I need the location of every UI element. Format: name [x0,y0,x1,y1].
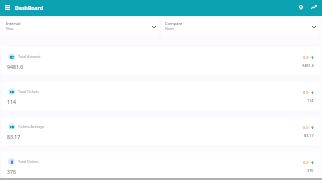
staticText: 376 [307,168,314,173]
staticText: Total Tickets [18,89,39,94]
button[interactable]: Analytics [307,0,320,16]
button[interactable]: Interval [3,18,159,35]
staticText: 0.0 [303,160,309,165]
staticText: 0.0 [303,55,309,60]
staticText: 0.0 [303,125,309,130]
staticText: DashBoard [15,4,44,11]
button[interactable]: Total Orders [2,152,320,180]
staticText: 9481.6 [7,63,24,70]
button[interactable]: Tickets Average [2,117,320,145]
button[interactable]: Compare [162,18,319,35]
button[interactable]: Location [295,0,307,16]
staticText: Total Amount [18,54,41,59]
staticText: 9481.6 [302,63,314,68]
staticText: 114 [307,98,314,103]
staticText: Tickets Average [18,124,45,129]
staticText: None [165,26,175,31]
staticText: Total Orders [18,159,39,164]
button[interactable]: Total Tickets [2,82,320,110]
staticText: Compare [165,21,183,26]
staticText: 376 [7,168,16,175]
staticText: Interval [6,21,21,26]
button[interactable]: Total Amount [2,47,320,75]
staticText: 83.17 [7,133,21,140]
staticText: 0.0 [303,90,309,95]
staticText: 114 [7,98,16,105]
button[interactable]: Menu [0,0,15,16]
staticText: 83.17 [304,133,314,138]
staticText: Now [6,26,14,31]
